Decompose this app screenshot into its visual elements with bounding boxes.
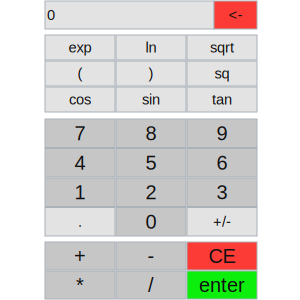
staticText: 0 xyxy=(145,211,156,233)
staticText: 9 xyxy=(216,122,227,144)
button[interactable]: 1 xyxy=(45,178,115,206)
button[interactable]: 2 xyxy=(116,178,186,206)
staticText: cos xyxy=(69,91,91,108)
button[interactable]: cos xyxy=(45,87,115,112)
button[interactable]: 3 xyxy=(187,178,257,206)
button[interactable]: 8 xyxy=(116,119,186,147)
staticText: sqrt xyxy=(210,39,234,56)
button[interactable]: enter xyxy=(187,271,257,299)
staticText: <- xyxy=(228,7,242,23)
button[interactable]: sq xyxy=(187,61,257,86)
button[interactable]: - xyxy=(116,242,186,270)
button[interactable]: ) xyxy=(116,61,186,86)
staticText: * xyxy=(76,274,84,296)
button[interactable]: 0 xyxy=(116,207,186,236)
button[interactable]: ln xyxy=(116,35,186,60)
button[interactable]: sqrt xyxy=(187,35,257,60)
button[interactable]: + xyxy=(45,242,115,270)
staticText: enter xyxy=(199,274,245,296)
staticText: ( xyxy=(77,65,82,82)
staticText: / xyxy=(148,274,154,296)
staticText: 4 xyxy=(74,152,85,174)
button[interactable]: CE xyxy=(187,242,257,270)
button[interactable]: tan xyxy=(187,87,257,112)
staticText: - xyxy=(147,245,154,267)
button[interactable]: 9 xyxy=(187,119,257,147)
staticText: + xyxy=(74,245,86,267)
staticText: CE xyxy=(208,245,235,267)
button[interactable]: 5 xyxy=(116,148,186,177)
button[interactable]: 4 xyxy=(45,148,115,177)
staticText: 5 xyxy=(145,152,156,174)
staticText: 1 xyxy=(74,181,85,203)
staticText: exp xyxy=(68,39,91,56)
staticText: ) xyxy=(148,65,153,82)
staticText: 8 xyxy=(145,122,156,144)
button[interactable]: <- xyxy=(214,1,257,29)
button[interactable]: 6 xyxy=(187,148,257,177)
button[interactable]: sin xyxy=(116,87,186,112)
staticText: 6 xyxy=(216,152,227,174)
button[interactable]: ( xyxy=(45,61,115,86)
staticText: sq xyxy=(214,65,229,82)
button[interactable]: exp xyxy=(45,35,115,60)
staticText: ln xyxy=(145,39,156,56)
staticText: tan xyxy=(212,91,232,108)
button[interactable]: . xyxy=(45,207,115,236)
staticText: 2 xyxy=(145,181,156,203)
staticText: sin xyxy=(142,91,160,108)
staticText: . xyxy=(78,214,82,230)
button[interactable]: / xyxy=(116,271,186,299)
staticText: 7 xyxy=(74,122,85,144)
button[interactable]: 7 xyxy=(45,119,115,147)
staticText: 3 xyxy=(216,181,227,203)
button[interactable]: +/- xyxy=(187,207,257,236)
staticText: +/- xyxy=(213,214,231,230)
button[interactable]: * xyxy=(45,271,115,299)
staticText: 0 xyxy=(47,7,55,23)
